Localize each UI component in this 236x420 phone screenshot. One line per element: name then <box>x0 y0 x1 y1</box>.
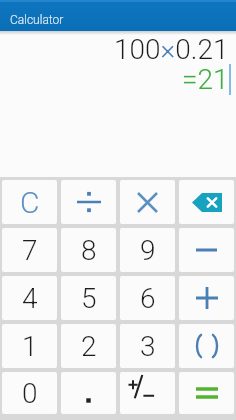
button[interactable]: 2 <box>61 324 116 368</box>
staticText: 4 <box>22 282 38 315</box>
button[interactable] <box>179 276 234 320</box>
staticText: 0 <box>22 377 38 410</box>
staticText: C <box>20 185 40 220</box>
button[interactable] <box>179 372 234 414</box>
button[interactable]: 9 <box>120 228 175 272</box>
button[interactable] <box>61 372 116 414</box>
button[interactable]: 6 <box>120 276 175 320</box>
staticText: 6 <box>140 282 156 315</box>
button[interactable] <box>179 228 234 272</box>
button[interactable] <box>120 372 175 414</box>
staticText: 100×0.21 <box>114 33 229 66</box>
button[interactable]: 0 <box>2 372 57 414</box>
button[interactable] <box>179 180 234 224</box>
staticText: =21 <box>182 63 229 96</box>
button[interactable]: 4 <box>2 276 57 320</box>
staticText: 8 <box>81 234 97 267</box>
button[interactable]: 1 <box>2 324 57 368</box>
button[interactable] <box>120 180 175 224</box>
staticText: Calculator <box>10 13 64 27</box>
button[interactable] <box>179 324 234 368</box>
button[interactable] <box>61 180 116 224</box>
button[interactable]: 7 <box>2 228 57 272</box>
staticText: 3 <box>140 330 156 363</box>
staticText: 2 <box>81 330 97 363</box>
staticText: 1 <box>22 330 38 363</box>
button[interactable]: 8 <box>61 228 116 272</box>
button[interactable]: 3 <box>120 324 175 368</box>
staticText: 7 <box>22 234 38 267</box>
button[interactable]: 5 <box>61 276 116 320</box>
staticText: 5 <box>81 282 97 315</box>
staticText: 9 <box>140 234 156 267</box>
button[interactable]: C <box>2 180 57 224</box>
